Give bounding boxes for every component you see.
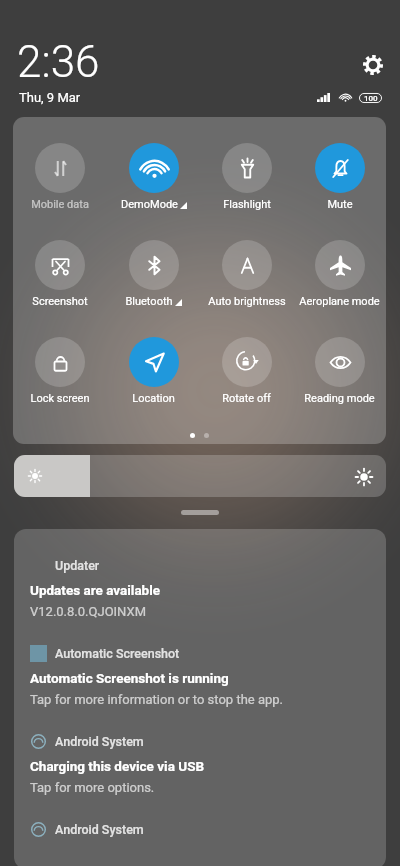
button[interactable]: Location xyxy=(107,337,200,405)
staticText: Screenshot xyxy=(32,295,88,308)
staticText: Rotate off xyxy=(222,392,271,405)
staticText: Bluetooth xyxy=(125,295,173,308)
button[interactable]: Automatic Screenshot xyxy=(14,625,386,713)
staticText: V12.0.8.0.QJOINXM xyxy=(30,604,146,619)
staticText: Tap for more options. xyxy=(30,780,155,795)
staticText: Android System xyxy=(55,822,144,837)
staticText: Automatic Screenshot is running xyxy=(30,670,229,686)
button[interactable]: Aeroplane mode xyxy=(293,240,386,308)
staticText: Lock screen xyxy=(30,392,90,405)
staticText: Mute xyxy=(327,198,353,211)
button[interactable]: Rotate off xyxy=(200,337,293,405)
button[interactable]: Lock screen xyxy=(13,337,107,405)
button[interactable]: Bluetooth xyxy=(107,240,200,308)
button[interactable]: Reading mode xyxy=(293,337,386,405)
button[interactable]: DemoMode xyxy=(107,143,200,211)
staticText: DemoMode xyxy=(121,198,178,211)
button[interactable]: Mute xyxy=(293,143,386,211)
button[interactable]: Mobile data xyxy=(13,143,107,211)
staticText: Android System xyxy=(55,734,144,749)
staticText: Updater xyxy=(55,558,100,573)
button[interactable]: Screenshot xyxy=(13,240,107,308)
staticText: Reading mode xyxy=(304,392,375,405)
button[interactable]: Flashlight xyxy=(200,143,293,211)
staticText: Flashlight xyxy=(223,198,271,211)
staticText: Auto brightness xyxy=(208,295,286,308)
staticText: Charging this device via USB xyxy=(30,758,205,774)
button[interactable]: Updater xyxy=(14,529,386,625)
staticText: Automatic Screenshot xyxy=(55,646,180,661)
staticText: Aeroplane mode xyxy=(299,295,380,308)
button[interactable]: Settings xyxy=(359,51,386,78)
staticText: Mobile data xyxy=(31,198,89,211)
staticText: Updates are available xyxy=(30,582,161,598)
staticText: Thu, 9 Mar xyxy=(19,90,81,105)
staticText: 2:36 xyxy=(17,36,100,88)
staticText: Location xyxy=(132,392,175,405)
button[interactable]: Auto brightness xyxy=(200,240,293,308)
button[interactable]: Android System xyxy=(14,713,386,801)
staticText: Tap for more information or to stop the … xyxy=(30,692,284,707)
staticText: 100 xyxy=(364,94,378,103)
button[interactable]: Android System xyxy=(14,801,386,838)
button[interactable]: Brightness xyxy=(14,455,386,497)
